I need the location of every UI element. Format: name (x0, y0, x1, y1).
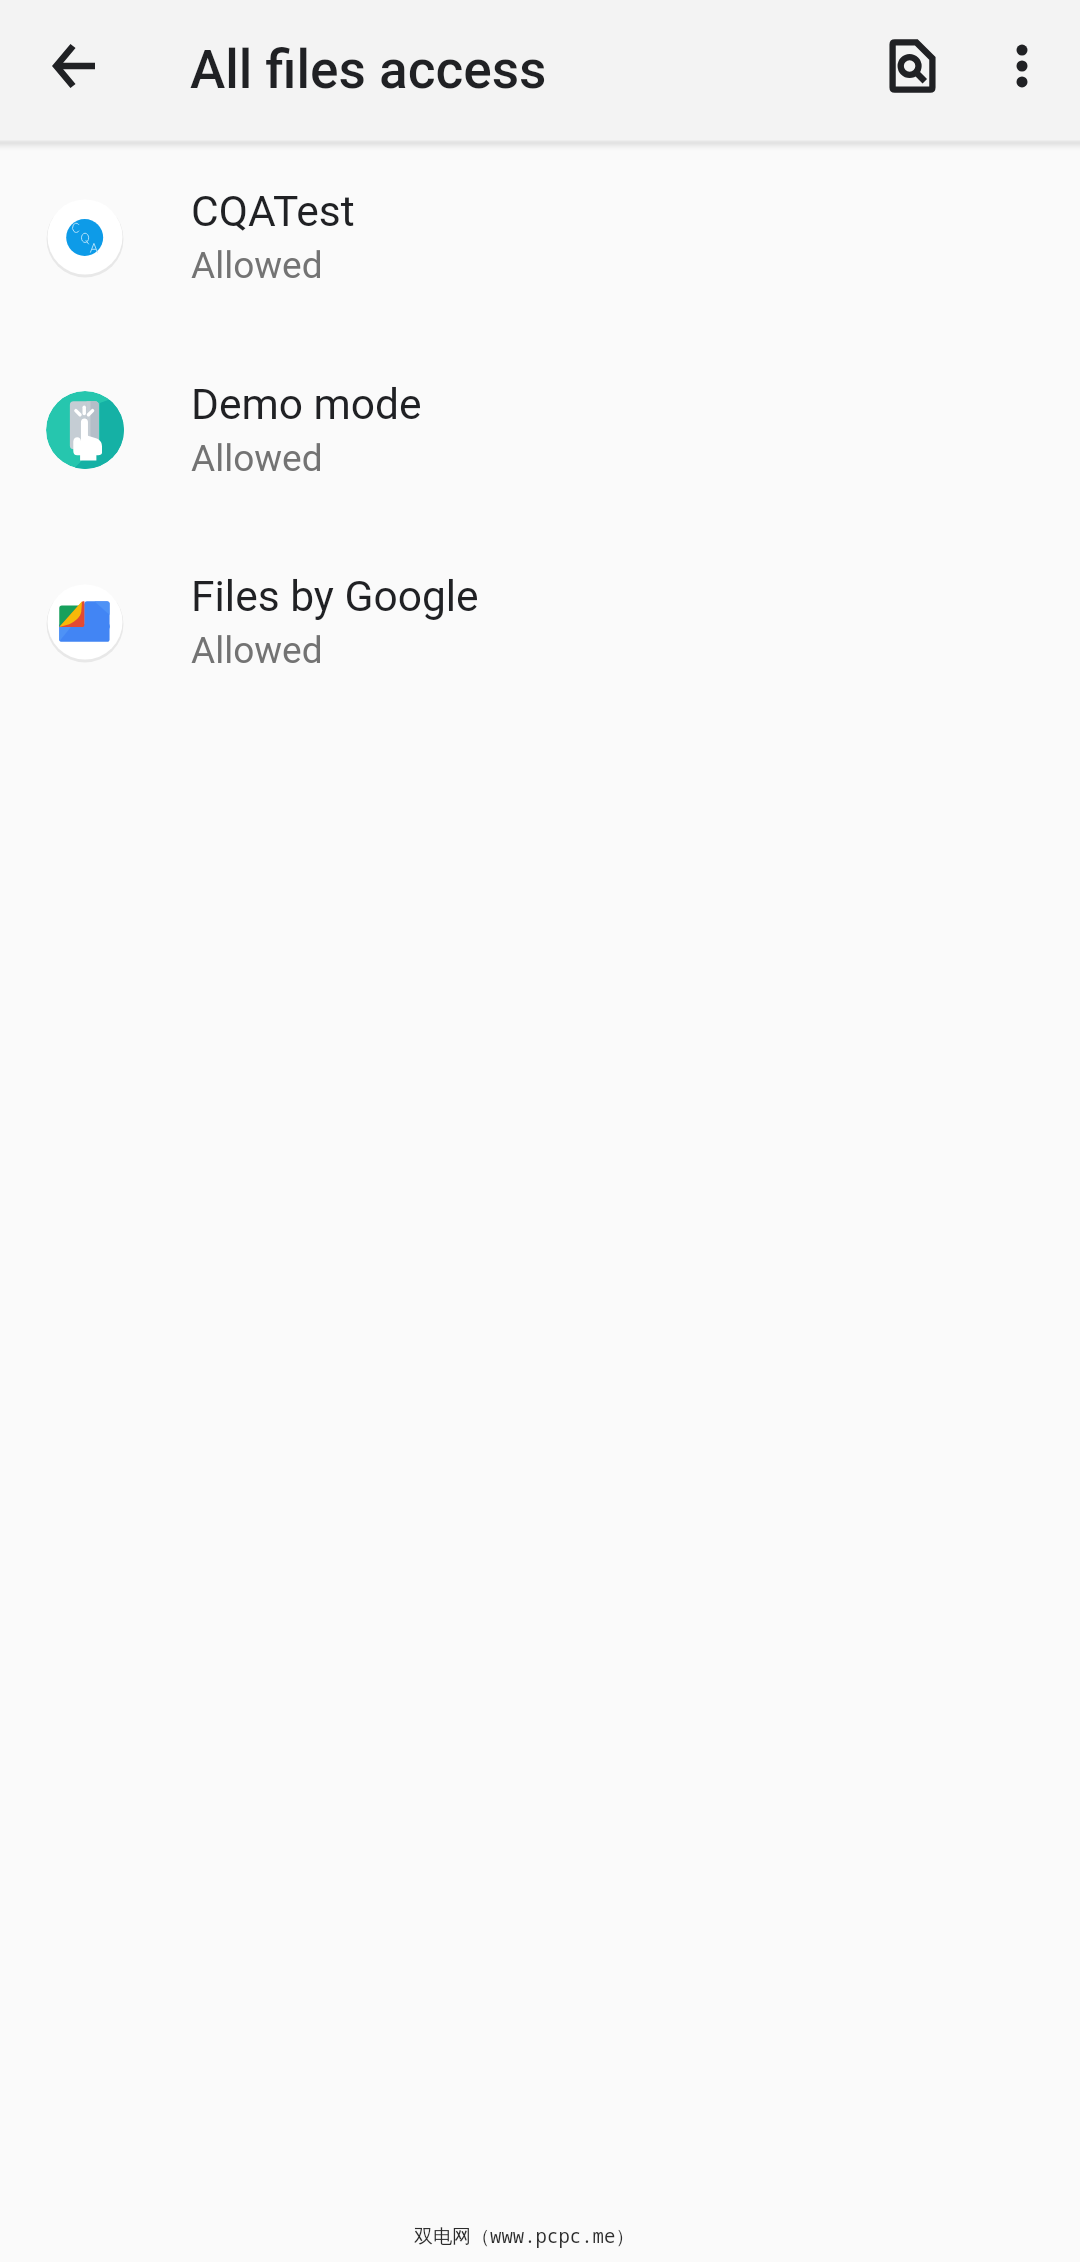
button[interactable]: Demo mode (0, 332, 1080, 524)
staticText: Allowed (191, 437, 323, 480)
staticText: Files by Google (191, 572, 479, 622)
button[interactable]: CQATest (0, 140, 1080, 332)
button[interactable]: Navigate up (30, 22, 118, 110)
button[interactable]: Search in document (867, 22, 955, 110)
staticText: CQATest (191, 187, 355, 237)
staticText: Demo mode (191, 380, 422, 430)
staticText: 双电网（www.pcpc.me） (414, 2223, 635, 2249)
button[interactable]: Files by Google (0, 524, 1080, 716)
staticText: All files access (190, 39, 547, 101)
staticText: Allowed (191, 629, 323, 672)
staticText: Allowed (191, 244, 323, 287)
button[interactable]: More options (978, 22, 1066, 110)
